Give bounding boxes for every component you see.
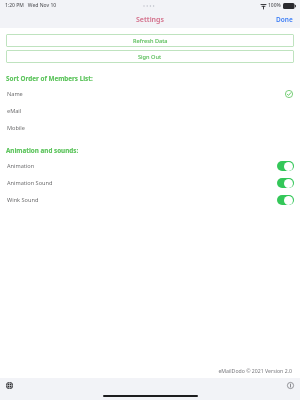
button[interactable]: Name [0,85,300,102]
staticText: Refresh Data [133,37,168,45]
button[interactable]: Sign Out [6,50,294,63]
button[interactable]: eMail [0,102,300,119]
button[interactable]: Done [269,12,300,27]
staticText: Name [7,90,23,98]
staticText: Sort Order of Members List: [6,74,300,83]
button[interactable]: Wink Sound [0,191,300,208]
button[interactable]: Refresh Data [6,34,294,47]
staticText: Wink Sound [7,196,39,204]
button[interactable]: Animation Sound toggle, on [277,178,294,188]
staticText: 1:20 PM Wed Nov 10 [5,2,57,9]
staticText: Animation and sounds: [6,146,300,155]
button[interactable]: Animation toggle, on [277,161,294,171]
staticText: eMailDodo © 2021 Version 2.0 [0,367,292,374]
staticText: Settings [136,15,164,25]
staticText: 100% [268,2,281,9]
button[interactable]: Animation Sound [0,174,300,191]
staticText: Done [276,15,293,24]
staticText: eMail [7,107,22,115]
button[interactable]: Mobile [0,119,300,136]
staticText: Animation Sound [7,179,53,187]
button[interactable]: Globe [4,380,15,391]
staticText: Mobile [7,124,25,132]
button[interactable]: Animation [0,157,300,174]
staticText: Sign Out [138,53,162,61]
button[interactable]: Info [285,380,296,391]
button[interactable]: Wink Sound toggle, on [277,195,294,205]
staticText: Animation [7,162,35,170]
